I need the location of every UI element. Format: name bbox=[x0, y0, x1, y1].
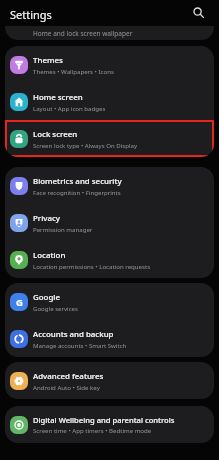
staticText: Layout • App icon badges bbox=[33, 104, 106, 112]
button[interactable]: Biometrics and security bbox=[5, 167, 214, 204]
button[interactable]: Advanced features bbox=[5, 362, 214, 399]
button[interactable]: Themes bbox=[5, 46, 214, 83]
button[interactable]: Location bbox=[5, 241, 214, 278]
staticText: Home screen bbox=[33, 92, 83, 103]
staticText: Face recognition • Fingerprints bbox=[33, 188, 121, 196]
staticText: Android Auto • Side key bbox=[33, 383, 100, 391]
staticText: Digital Wellbeing and parental controls bbox=[33, 415, 175, 425]
staticText: Accounts and backup bbox=[33, 329, 114, 340]
staticText: Screen lock type • Always On Display bbox=[33, 141, 138, 149]
button[interactable]: Privacy bbox=[5, 204, 214, 241]
staticText: Themes • Wallpapers • Icons bbox=[33, 67, 114, 75]
staticText: Privacy bbox=[33, 213, 60, 224]
staticText: Settings bbox=[10, 7, 52, 22]
button[interactable]: Digital Wellbeing and parental controls bbox=[5, 406, 214, 443]
staticText: Lock screen bbox=[33, 129, 78, 140]
staticText: Biometrics and security bbox=[33, 176, 122, 187]
button[interactable]: Home and lock screen wallpaper bbox=[5, 26, 214, 40]
staticText: Themes bbox=[33, 55, 63, 66]
button[interactable]: G bbox=[5, 283, 214, 320]
staticText: Permission manager bbox=[33, 225, 93, 233]
staticText: Advanced features bbox=[33, 371, 104, 382]
button[interactable]: Lock screen bbox=[5, 120, 214, 157]
staticText: G bbox=[16, 296, 23, 309]
staticText: Google services bbox=[33, 304, 78, 312]
staticText: Location permissions • Location requests bbox=[33, 262, 151, 270]
staticText: Location bbox=[33, 250, 66, 261]
staticText: Manage accounts • Smart Switch bbox=[33, 341, 127, 349]
staticText: Google bbox=[33, 292, 60, 303]
button[interactable]: Home screen bbox=[5, 83, 214, 120]
staticText: Home and lock screen wallpaper bbox=[33, 29, 133, 38]
button[interactable] bbox=[192, 6, 206, 20]
staticText: Screen time • App timers • Bedtime mode bbox=[33, 426, 152, 434]
button[interactable]: Accounts and backup bbox=[5, 320, 214, 357]
